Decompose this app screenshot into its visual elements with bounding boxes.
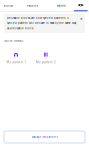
button[interactable]: Dismiss (79, 16, 84, 21)
staticText: My pattern 1 (6, 61, 25, 64)
button[interactable]: Media (48, 0, 74, 11)
staticText: Manage my patterns (31, 135, 57, 138)
button[interactable]: My pattern 1 (4, 53, 28, 64)
button[interactable]: My pattern 2 (34, 53, 58, 64)
staticText: Media (57, 4, 65, 7)
staticText: Blocks (3, 4, 12, 7)
button[interactable]: Manage my patterns (4, 131, 85, 143)
button[interactable]: Patterns (16, 0, 48, 11)
staticText: My pattern 2 (36, 61, 56, 64)
button[interactable]: Blocks (0, 0, 16, 11)
staticText: Patterns (27, 4, 38, 7)
staticText: Reusable blocks are now synced patterns.… (7, 16, 76, 30)
button[interactable]: Preview (74, 0, 87, 11)
staticText: ✕ (80, 17, 83, 21)
staticText: SYNCED PATTERNS (4, 40, 23, 43)
